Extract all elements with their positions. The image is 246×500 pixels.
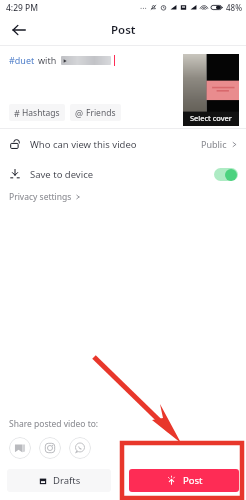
button[interactable]: Share to messages bbox=[9, 437, 31, 459]
button[interactable]: Save to device bbox=[0, 159, 246, 189]
button[interactable]: Save to device toggle bbox=[214, 168, 238, 181]
staticText: Hashtags bbox=[22, 107, 60, 119]
button[interactable]: Privacy settings bbox=[9, 191, 81, 203]
button[interactable]: Share to Instagram bbox=[39, 437, 61, 459]
staticText: Share posted video to: bbox=[9, 418, 99, 430]
staticText: Public bbox=[201, 138, 227, 150]
staticText: Drafts bbox=[53, 474, 81, 487]
button[interactable]: @ bbox=[70, 104, 121, 121]
staticText: # bbox=[14, 107, 20, 119]
staticText: Post bbox=[183, 474, 203, 487]
staticText: #duet bbox=[9, 54, 35, 66]
staticText: Select cover bbox=[190, 113, 232, 123]
button[interactable]: Who can view this video bbox=[0, 129, 246, 159]
button[interactable]: # bbox=[9, 104, 65, 121]
staticText: @ bbox=[75, 107, 84, 119]
button[interactable]: Drafts bbox=[7, 469, 111, 492]
staticText: Who can view this video bbox=[30, 138, 137, 151]
staticText: Post bbox=[111, 22, 136, 38]
staticText: Save to device bbox=[30, 168, 94, 181]
staticText: Friends bbox=[86, 107, 116, 119]
staticText: Privacy settings bbox=[9, 191, 72, 203]
staticText: 48% bbox=[226, 2, 242, 13]
staticText: with bbox=[38, 54, 57, 66]
button[interactable]: Select cover bbox=[183, 54, 239, 126]
button[interactable]: Post bbox=[129, 469, 239, 492]
staticText: 4:29 PM bbox=[6, 2, 39, 14]
button[interactable]: Share to WhatsApp bbox=[69, 437, 91, 459]
button[interactable]: Back bbox=[8, 19, 30, 41]
